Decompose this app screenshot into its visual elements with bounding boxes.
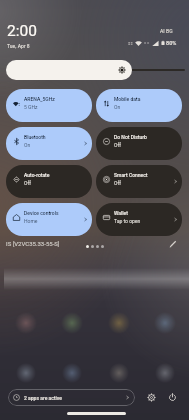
button[interactable]: Do Not Disturb — [96, 127, 182, 160]
button[interactable]: Brightness — [6, 60, 132, 80]
staticText: Off — [114, 142, 121, 148]
button[interactable]: ARENA_5GHz — [6, 89, 92, 122]
staticText: 80% — [166, 40, 177, 46]
staticText: Off — [114, 180, 121, 186]
button[interactable]: 2 apps are active — [8, 389, 135, 406]
button[interactable]: Smart Connect — [96, 165, 182, 198]
staticText: On — [24, 142, 31, 148]
button[interactable]: Auto-rotate — [6, 165, 92, 198]
staticText: Wallet — [114, 210, 128, 216]
staticText: Bluetooth — [24, 134, 46, 140]
staticText: On — [114, 104, 121, 110]
staticText: AI BG — [160, 28, 173, 34]
button[interactable]: Settings — [144, 390, 159, 405]
staticText: IS [V2VC35.33-55-S] — [6, 240, 60, 247]
staticText: Mobile data — [114, 96, 141, 102]
staticText: ARENA_5GHz — [24, 96, 55, 102]
staticText: Home — [24, 218, 38, 224]
staticText: Auto-rotate — [24, 172, 50, 178]
button[interactable]: Bluetooth — [6, 127, 92, 160]
staticText: 2 apps are active — [24, 395, 62, 401]
button[interactable]: Mobile data — [96, 89, 182, 122]
staticText: Do Not Disturb — [114, 134, 147, 140]
button[interactable]: Edit tiles — [166, 237, 180, 251]
button[interactable]: Power — [165, 390, 180, 405]
staticText: 5 GHz — [24, 104, 38, 110]
staticText: Tap to open — [114, 218, 141, 224]
staticText: Tue, Apr 8 — [7, 43, 30, 49]
staticText: Device controls — [24, 210, 59, 216]
staticText: Off — [24, 180, 31, 186]
staticText: 2:00 — [7, 22, 37, 40]
staticText: Smart Connect — [114, 172, 148, 178]
button[interactable]: Wallet — [96, 203, 182, 236]
button[interactable]: Device controls — [6, 203, 92, 236]
